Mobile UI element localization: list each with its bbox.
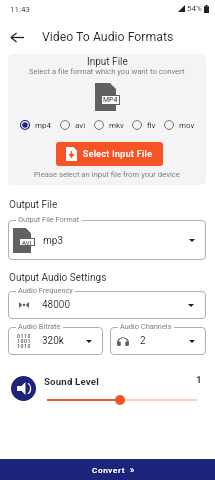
staticText: Output File [9,199,58,211]
button[interactable]: 2 [110,327,206,355]
staticText: 1001 [17,338,31,344]
staticText: mkv [109,121,124,130]
button[interactable]: mkv [90,120,128,130]
staticText: AVI [22,239,32,245]
button[interactable]: Select Input File [56,142,163,166]
staticText: Sound Level [44,376,99,387]
staticText: » [130,465,135,475]
button[interactable]: mp4 [16,120,56,130]
staticText: avi [75,121,86,130]
staticText: 1 [196,374,202,385]
staticText: 320k [42,335,64,347]
staticText: mov [179,121,195,130]
button[interactable]: Sound level slider [41,393,203,407]
button[interactable]: 0110 [8,327,103,355]
staticText: mp4 [35,121,52,130]
staticText: Audio Channels [120,322,172,331]
staticText: Audio Frequency [18,286,73,295]
button[interactable]: AVI [8,220,206,260]
staticText: 2 [140,335,146,347]
button[interactable]: flv [128,120,160,130]
button[interactable]: avi [56,120,90,130]
staticText: Video To Audio Formats [42,30,174,44]
staticText: Select Input File [83,149,153,159]
staticText: 54% [187,4,202,13]
staticText: Select a file format which you want to c… [29,67,185,76]
button[interactable]: Back [2,22,32,52]
staticText: Output Audio Settings [9,272,107,284]
button[interactable]: 48000 [8,291,206,319]
staticText: Please select an input file from your de… [34,170,180,179]
staticText: 48000 [42,299,71,311]
staticText: mp3 [43,235,64,247]
button[interactable]: mov [160,120,199,130]
staticText: Audio Bitrate [18,322,61,331]
staticText: 0110 [17,333,31,339]
staticText: 11:43 [10,5,30,14]
staticText: Input File [87,56,128,68]
staticText: flv [147,121,156,130]
staticText: 1010 [17,343,31,349]
staticText: Convert [92,466,126,475]
button[interactable]: Convert [0,459,215,480]
staticText: Output File Format [18,215,80,224]
button[interactable]: Mute sound [11,376,36,401]
staticText: MP4 [103,96,118,104]
